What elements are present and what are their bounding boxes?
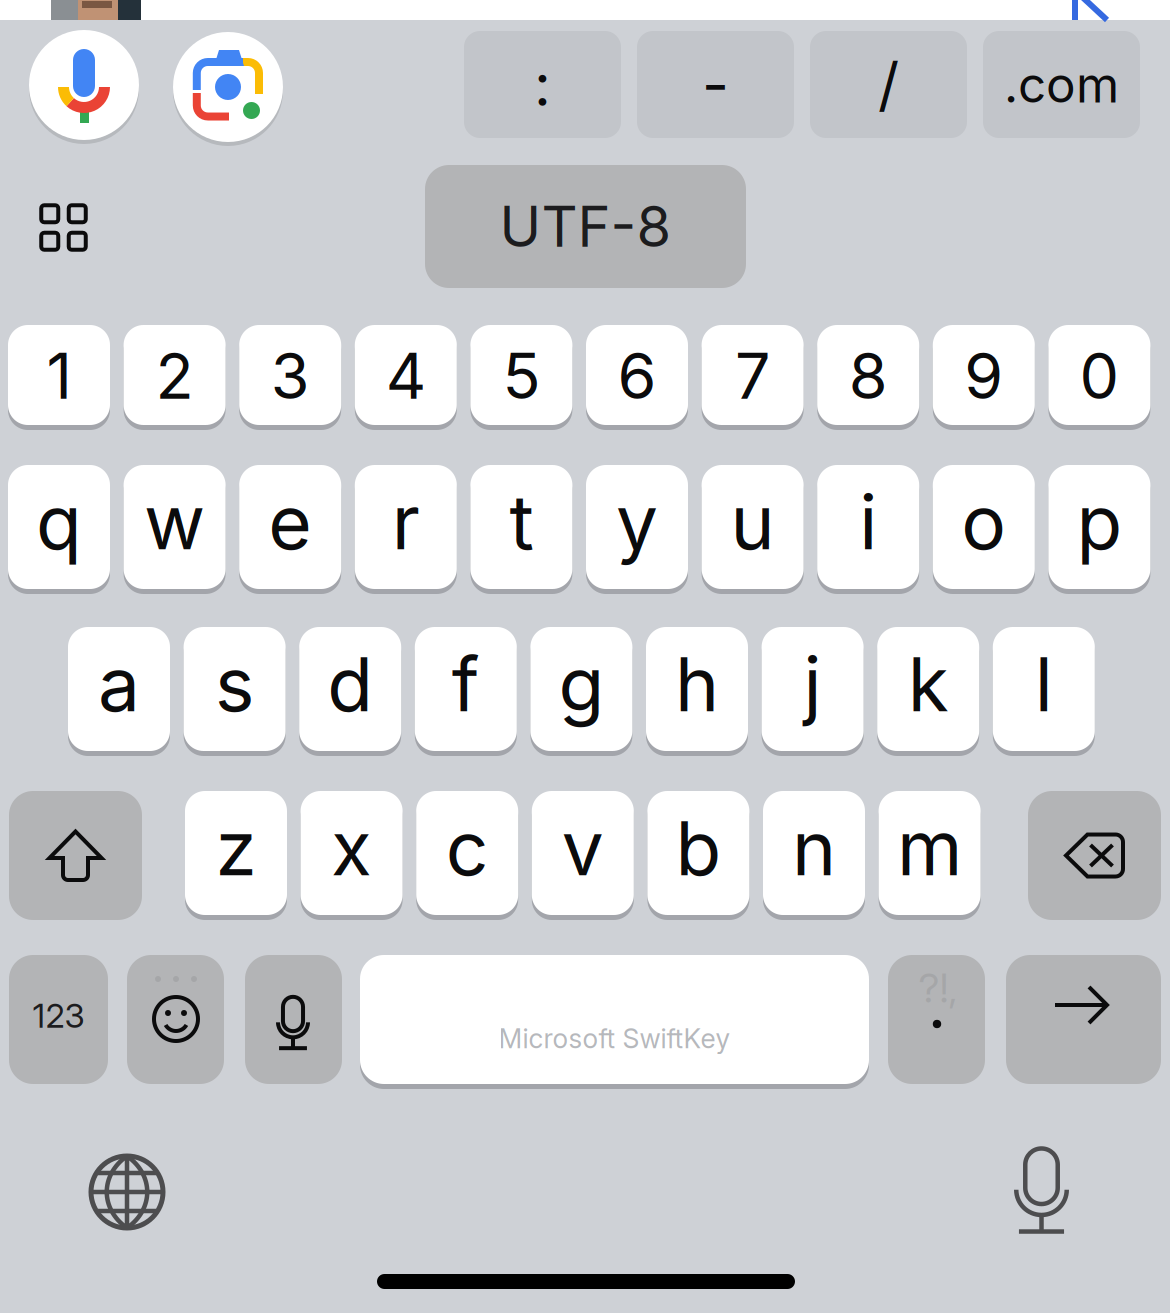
button[interactable]: o	[933, 465, 1035, 589]
button[interactable]: Backspace	[1028, 791, 1161, 920]
button[interactable]: 5	[470, 325, 572, 425]
button[interactable]: a	[68, 627, 170, 751]
staticText: a	[98, 639, 140, 729]
button[interactable]: Return	[1006, 955, 1161, 1084]
button[interactable]: -	[637, 31, 794, 138]
staticText: UTF-8	[499, 193, 671, 260]
button[interactable]: Emoji	[127, 955, 224, 1084]
button[interactable]: Dictation	[1014, 1147, 1069, 1233]
button[interactable]: Voice typing	[245, 955, 342, 1084]
button[interactable]: Space	[360, 955, 869, 1084]
button[interactable]: 8	[817, 325, 919, 425]
button[interactable]: Next keyboard	[87, 1152, 167, 1232]
button[interactable]: z	[185, 791, 287, 915]
button[interactable]: Google Lens	[173, 32, 283, 142]
staticText: .com	[1004, 55, 1119, 114]
staticText: m	[897, 803, 962, 893]
staticText: 4	[386, 338, 426, 414]
staticText: u	[731, 477, 775, 567]
staticText: p	[1076, 477, 1122, 567]
staticText: z	[215, 803, 256, 893]
staticText: g	[558, 639, 604, 729]
staticText: l	[1035, 639, 1053, 729]
button[interactable]: /	[810, 31, 967, 138]
button[interactable]: 9	[933, 325, 1035, 425]
button[interactable]: b	[647, 791, 749, 915]
staticText: r	[392, 477, 420, 567]
staticText: t	[509, 477, 533, 567]
button[interactable]: t	[470, 465, 572, 589]
button[interactable]: j	[762, 627, 864, 751]
button[interactable]: e	[239, 465, 341, 589]
button[interactable]: q	[8, 465, 110, 589]
button[interactable]: y	[586, 465, 688, 589]
button[interactable]: x	[301, 791, 403, 915]
button[interactable]: 3	[239, 325, 341, 425]
button[interactable]: 0	[1048, 325, 1150, 425]
staticText: c	[446, 803, 489, 893]
button[interactable]: Voice search	[29, 30, 139, 140]
staticText: 2	[156, 338, 194, 414]
button[interactable]: 7	[702, 325, 804, 425]
button[interactable]: UTF-8	[425, 165, 746, 288]
staticText: 9	[964, 338, 1003, 414]
button[interactable]: u	[702, 465, 804, 589]
staticText: i	[859, 477, 877, 567]
staticText: 6	[617, 338, 656, 414]
staticText: q	[36, 477, 82, 567]
staticText: 8	[849, 338, 888, 414]
button[interactable]: 1	[8, 325, 110, 425]
button[interactable]: n	[763, 791, 865, 915]
button[interactable]: p	[1048, 465, 1150, 589]
staticText: f	[452, 639, 480, 729]
staticText: :	[534, 49, 551, 120]
button[interactable]: :	[464, 31, 621, 138]
button[interactable]: k	[877, 627, 979, 751]
staticText: -	[702, 49, 729, 120]
staticText: e	[268, 477, 312, 567]
button[interactable]: w	[124, 465, 226, 589]
staticText: k	[908, 639, 949, 729]
staticText: 0	[1079, 338, 1119, 414]
staticText: 1	[46, 338, 71, 414]
button[interactable]: 2	[124, 325, 226, 425]
button[interactable]: Keyboard menu	[39, 203, 88, 252]
staticText: /	[878, 49, 899, 120]
button[interactable]: f	[415, 627, 517, 751]
button[interactable]: 4	[355, 325, 457, 425]
button[interactable]: h	[646, 627, 748, 751]
button[interactable]: s	[184, 627, 286, 751]
button[interactable]: m	[879, 791, 981, 915]
button[interactable]: Period	[888, 955, 985, 1084]
staticText: s	[215, 639, 254, 729]
staticText: 5	[502, 338, 540, 414]
staticText: d	[327, 639, 373, 729]
button[interactable]: 6	[586, 325, 688, 425]
staticText: j	[804, 639, 822, 729]
button[interactable]: l	[993, 627, 1095, 751]
button[interactable]: i	[817, 465, 919, 589]
staticText: b	[675, 803, 721, 893]
button[interactable]: g	[530, 627, 632, 751]
button[interactable]: .com	[983, 31, 1140, 138]
button[interactable]: v	[532, 791, 634, 915]
staticText: w	[144, 477, 205, 567]
staticText: ?!,	[918, 964, 957, 1012]
staticText: 123	[32, 995, 84, 1036]
button[interactable]: d	[299, 627, 401, 751]
staticText: o	[961, 477, 1006, 567]
button[interactable]: Shift	[9, 791, 142, 920]
staticText: Microsoft SwiftKey	[498, 1022, 730, 1055]
staticText: n	[792, 803, 836, 893]
staticText: 3	[271, 338, 310, 414]
staticText: y	[616, 477, 658, 567]
button[interactable]: 123	[9, 955, 108, 1084]
staticText: x	[331, 803, 372, 893]
button[interactable]: r	[355, 465, 457, 589]
staticText: h	[675, 639, 719, 729]
staticText: 7	[735, 338, 770, 414]
button[interactable]: c	[416, 791, 518, 915]
staticText: v	[562, 803, 604, 893]
